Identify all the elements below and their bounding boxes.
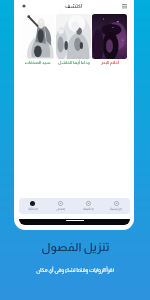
button[interactable]: المتابعة [74, 198, 102, 214]
staticText: اكتشف [65, 3, 83, 9]
button[interactable]: Menu [119, 1, 129, 11]
button[interactable]: وداعا أيها الفاشل [56, 14, 91, 65]
staticText: تنزيل الفصول [41, 241, 110, 254]
button[interactable]: المكتبة [19, 198, 46, 214]
button[interactable]: العمل [46, 198, 74, 214]
button[interactable]: الرئيسية [102, 198, 130, 214]
button[interactable]: أحلام البحر [92, 14, 127, 65]
staticText: المكتبة [28, 207, 38, 211]
button[interactable]: سيد الصفقات التجارية [20, 14, 55, 65]
staticText: أحلام البحر [101, 60, 119, 65]
staticText: وداعا أيها الفاشل [58, 60, 90, 65]
button[interactable]: Profile [19, 1, 29, 11]
staticText: المتابعة [83, 207, 94, 211]
staticText: اقرأ الروايات وقتما تشاء وفي أي مكان [36, 267, 114, 273]
staticText: العمل [56, 207, 65, 211]
staticText: الرئيسية [110, 207, 122, 211]
staticText: سيد الصفقات التجارية [20, 60, 55, 65]
